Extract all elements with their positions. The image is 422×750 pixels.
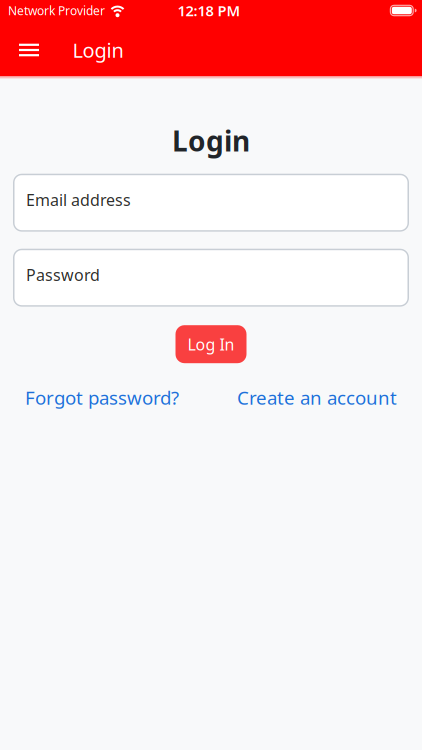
staticText: Login [72, 37, 123, 63]
button[interactable]: Forgot password? [25, 385, 179, 410]
staticText: Login [172, 122, 250, 159]
textField[interactable]: Password [26, 264, 396, 285]
staticText: Password [26, 264, 100, 285]
staticText: 12:18 PM [177, 1, 240, 20]
button[interactable]: Menu [0, 25, 55, 75]
button[interactable]: Log In [175, 325, 246, 363]
staticText: Network Provider [8, 2, 105, 18]
staticText: Forgot password? [25, 385, 179, 410]
staticText: Email address [26, 189, 131, 210]
textField[interactable]: Email address [26, 189, 396, 210]
staticText: Log In [187, 334, 234, 355]
staticText: Create an account [237, 385, 397, 410]
button[interactable]: Create an account [237, 385, 397, 410]
